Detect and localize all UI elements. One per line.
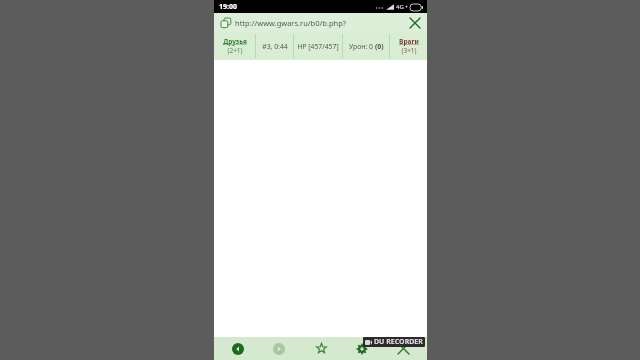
staticText: #3, 0:44	[262, 42, 288, 51]
staticText: Друзья	[223, 37, 247, 46]
button[interactable]: Урон: 0	[343, 32, 389, 60]
button[interactable]: Tabs	[218, 15, 233, 30]
button[interactable]: Bookmarks	[304, 337, 338, 360]
staticText: HP [457/457]	[297, 42, 339, 51]
button[interactable]: Друзья	[214, 32, 255, 60]
button[interactable]: HP [457/457]	[294, 32, 342, 60]
button[interactable]: Settings	[345, 337, 379, 360]
button[interactable]: Close tab	[406, 14, 423, 31]
button[interactable]: Forward	[262, 337, 296, 360]
staticText: Урон: 0	[349, 42, 375, 51]
staticText: http://www.gwars.ru/b0/b.php?bid=1410420…	[235, 18, 404, 28]
button[interactable]: Back	[221, 337, 255, 360]
staticText: +	[405, 4, 408, 11]
button[interactable]: #3, 0:44	[256, 32, 293, 60]
staticText: DU RECORDER	[374, 337, 423, 347]
button[interactable]: Close	[386, 337, 420, 360]
button[interactable]: Враги	[390, 32, 427, 60]
staticText: 19:00	[219, 2, 237, 12]
staticText: 4G	[396, 3, 404, 11]
staticText: Враги	[399, 37, 419, 46]
staticText: (3+1)	[401, 46, 417, 55]
staticText: (0)	[375, 42, 384, 51]
staticText: (2+1)	[227, 46, 243, 55]
